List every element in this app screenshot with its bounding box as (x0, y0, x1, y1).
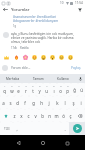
button[interactable]: Heart eyes reaction (30, 53, 39, 61)
staticText: 1g (13, 24, 17, 28)
staticText: ç (69, 113, 72, 119)
staticText: ?123 (4, 127, 10, 131)
button[interactable]: Back (0, 6, 11, 13)
staticText: ü (80, 87, 83, 93)
button[interactable]: Home (37, 137, 49, 149)
button[interactable]: Fire reaction (11, 53, 21, 61)
button[interactable]: ç (67, 109, 74, 122)
button[interactable]: j (45, 96, 53, 109)
button[interactable]: ü (78, 83, 85, 96)
staticText: 9 (60, 85, 62, 88)
button[interactable]: Recent apps (61, 137, 73, 149)
staticText: 5 (32, 85, 34, 88)
button[interactable]: z (11, 109, 18, 122)
button[interactable]: 5 (29, 83, 36, 96)
staticText: m (54, 113, 59, 119)
button[interactable]: k (53, 96, 61, 109)
button[interactable]: Flower reaction (21, 53, 30, 61)
button[interactable]: Back (12, 137, 24, 149)
button[interactable]: 3 (15, 83, 22, 96)
button[interactable]: Shift (0, 109, 11, 122)
button[interactable]: Sad reaction (57, 53, 66, 61)
staticText: Paylaş (71, 66, 81, 70)
button[interactable]: Crown reaction (1, 53, 11, 61)
staticText: ayla_y Bunu kesfettigim icin cok mutluyu… (11, 32, 83, 44)
button[interactable]: Surprised reaction (48, 53, 57, 61)
staticText: s (9, 100, 12, 106)
staticText: , (16, 126, 18, 132)
staticText: i (80, 100, 82, 106)
button[interactable]: g (29, 96, 37, 109)
button[interactable]: d (14, 96, 21, 109)
staticText: Yorumlar (11, 7, 30, 13)
button[interactable]: Send (73, 124, 82, 133)
button[interactable]: 0 (64, 83, 71, 96)
staticText: l (64, 100, 66, 106)
staticText: r (25, 88, 27, 94)
button[interactable]: Clap reaction (66, 53, 75, 61)
button[interactable]: n (46, 109, 53, 122)
staticText: z (13, 113, 16, 119)
button[interactable]: . (61, 122, 69, 135)
button[interactable]: Yanitla (20, 46, 29, 50)
button[interactable]: Paylaş (70, 65, 82, 71)
staticText: ş (72, 100, 75, 106)
button[interactable]: ?123 (0, 122, 13, 135)
staticText: 0 (67, 85, 69, 88)
button[interactable]: 6 (36, 83, 43, 96)
staticText: h (40, 100, 43, 106)
staticText: 10 (60, 1, 64, 5)
button[interactable]: i (77, 96, 85, 109)
button[interactable]: s (7, 96, 14, 109)
staticText: ğ (73, 87, 76, 93)
button[interactable]: 2 (8, 83, 15, 96)
staticText: n (48, 113, 51, 119)
staticText: t (32, 88, 34, 94)
button[interactable]: b (39, 109, 46, 122)
staticText: o (59, 88, 62, 94)
button[interactable]: x (18, 109, 25, 122)
button[interactable]: ş (69, 96, 77, 109)
button[interactable]: 8 (50, 83, 57, 96)
button[interactable]: Kullanıcı (51, 74, 76, 83)
button[interactable]: c (25, 109, 32, 122)
button[interactable]: 9 (57, 83, 64, 96)
staticText: 3 (18, 85, 20, 88)
button[interactable]: Sort comments (75, 6, 85, 13)
staticText: 4 (25, 85, 27, 88)
button[interactable]: 1 (0, 83, 8, 96)
button[interactable]: 4 (22, 83, 29, 96)
staticText: ı (53, 88, 55, 94)
staticText: 17dk (11, 46, 17, 50)
staticText: 7 (46, 85, 48, 88)
staticText: 8 (53, 85, 55, 88)
staticText: y (38, 88, 41, 94)
staticText: v (34, 113, 37, 119)
button[interactable]: f (21, 96, 29, 109)
button[interactable]: 7 (43, 83, 50, 96)
button[interactable]: Backspace (74, 109, 85, 122)
staticText: 6 (39, 85, 41, 88)
staticText: d (16, 100, 19, 106)
button[interactable]: m (53, 109, 60, 122)
staticText: f (24, 100, 26, 106)
staticText: g (32, 100, 35, 106)
button[interactable]: , (13, 122, 21, 135)
staticText: b (41, 113, 44, 119)
staticText: x (20, 113, 23, 119)
button[interactable]: ğ (71, 83, 78, 96)
button[interactable]: Tamam (26, 74, 51, 83)
staticText: q (3, 88, 6, 94)
button[interactable]: a (0, 96, 7, 109)
staticText: 2 (11, 85, 13, 88)
button[interactable]: h (37, 96, 45, 109)
staticText: e (17, 88, 20, 94)
button[interactable]: l (61, 96, 69, 109)
staticText: Tamam (33, 77, 44, 81)
button[interactable]: ö (60, 109, 67, 122)
button[interactable]: Voice input (76, 74, 85, 83)
button[interactable]: v (32, 109, 39, 122)
button[interactable]: Merhaba (0, 74, 26, 83)
button[interactable]: Laughing reaction (39, 53, 48, 61)
